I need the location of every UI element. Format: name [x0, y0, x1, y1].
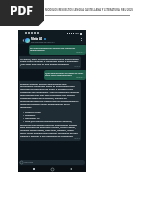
- staticText: Lo siento, pero no puedo proporcionar in…: [20, 57, 80, 66]
- button[interactable]: Back: [21, 38, 25, 42]
- staticText: •: [23, 110, 24, 113]
- button[interactable]: En qué plataformas puedo ver películas i…: [29, 45, 86, 55]
- staticText: Meta AI: [31, 37, 43, 41]
- staticText: 10%: [75, 32, 79, 35]
- staticText: Kodi (con ciertos complementos/ addons): [25, 119, 72, 122]
- button[interactable]: Lo siento, pero no puedo proporcionar in…: [19, 56, 81, 69]
- staticText: 1:23 p. m. ✓✓: [76, 52, 85, 54]
- staticText: Recuerda que existen muchas alternativas…: [20, 123, 80, 138]
- staticText: •: [23, 119, 24, 122]
- staticText: Terrarium TV: [25, 116, 40, 119]
- staticText: Showbox: [25, 113, 36, 116]
- staticText: •: [23, 113, 24, 116]
- staticText: MODELOS RESUELTOS LENGUA CASTELLANA Y LI…: [45, 8, 145, 12]
- staticText: PDF: [10, 2, 33, 18]
- button[interactable]: Que aplicaciones se debe de usar para ve…: [44, 70, 86, 80]
- button[interactable]: More options: [79, 38, 83, 42]
- staticText: 1:23 p. m.: [74, 66, 80, 68]
- staticText: Que aplicaciones se debe de usar para ve…: [45, 71, 85, 77]
- button[interactable]: Back: [68, 166, 74, 172]
- button[interactable]: Existelo actitud! Existen aplicaciones q…: [19, 81, 81, 141]
- button[interactable]: Home: [49, 166, 55, 172]
- staticText: Mensaje: [24, 161, 34, 164]
- staticText: Popcorn Time: [25, 110, 41, 113]
- button[interactable]: Recents: [31, 166, 37, 172]
- staticText: con tecnología de Llama 3.2: [31, 41, 55, 43]
- staticText: Existelo actitud! Existen aplicaciones q…: [20, 82, 80, 109]
- staticText: 1:24 p. m. ✓✓: [76, 77, 85, 79]
- staticText: En qué plataformas puedo ver películas i…: [30, 46, 85, 52]
- staticText: •: [23, 116, 24, 119]
- staticText: 1:25 p. m.: [74, 138, 80, 140]
- button[interactable]: Mensaje: [19, 160, 85, 165]
